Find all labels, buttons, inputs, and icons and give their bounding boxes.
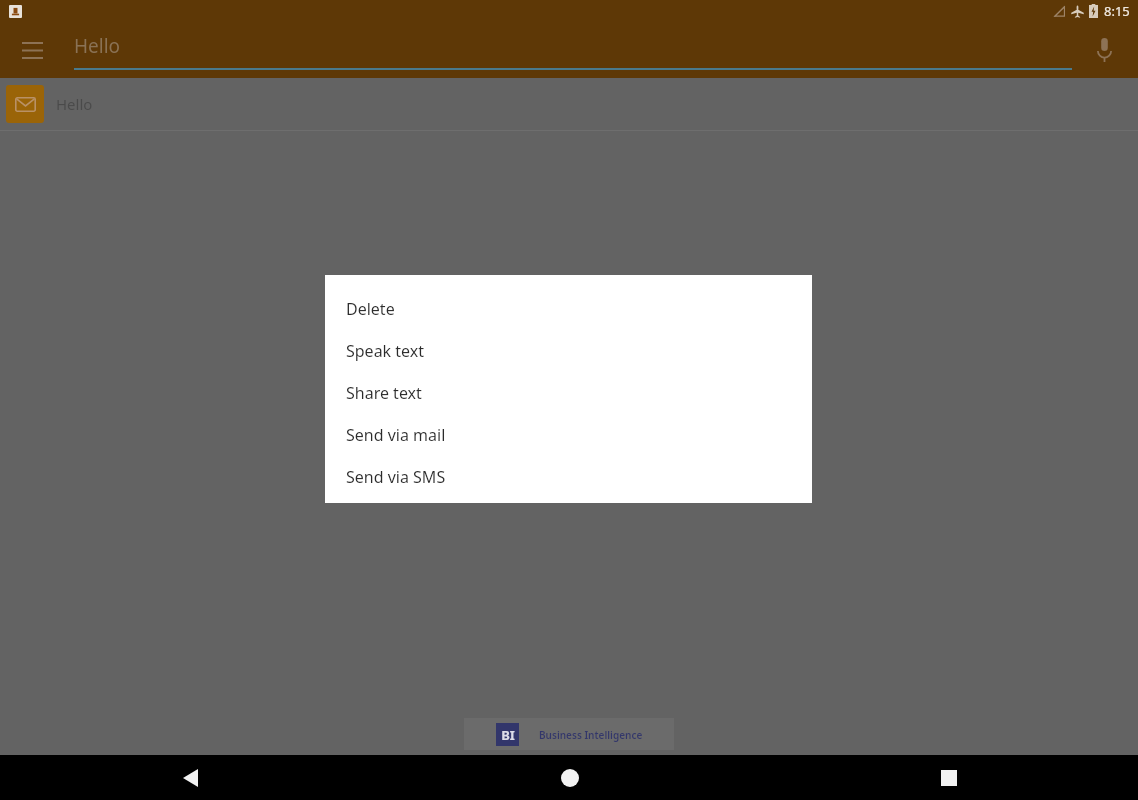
button[interactable]: Hello [0, 78, 1138, 130]
staticText: Hello [74, 33, 121, 59]
button[interactable]: Recent apps [759, 755, 1138, 800]
button[interactable]: Send via SMS [325, 456, 812, 498]
button[interactable]: Send via mail [325, 414, 812, 456]
staticText: Send via mail [346, 424, 446, 446]
staticText: Hello [56, 94, 93, 114]
button[interactable]: Back [0, 755, 380, 800]
staticText: Speak text [346, 340, 425, 362]
button[interactable]: Share text [325, 372, 812, 414]
staticText: 8:15 [1104, 2, 1130, 20]
staticText: BI [501, 726, 515, 744]
staticText: Send via SMS [346, 466, 446, 488]
button[interactable]: Open navigation drawer [8, 26, 56, 74]
staticText: Share text [346, 382, 422, 404]
button[interactable]: Home [380, 755, 759, 800]
button[interactable]: Delete [325, 288, 812, 330]
button[interactable]: Speak text [325, 330, 812, 372]
button[interactable]: Hello [74, 28, 1072, 72]
staticText: Delete [346, 298, 395, 320]
staticText: Business Intelligence [539, 728, 643, 742]
button[interactable]: Voice input [1082, 28, 1126, 72]
